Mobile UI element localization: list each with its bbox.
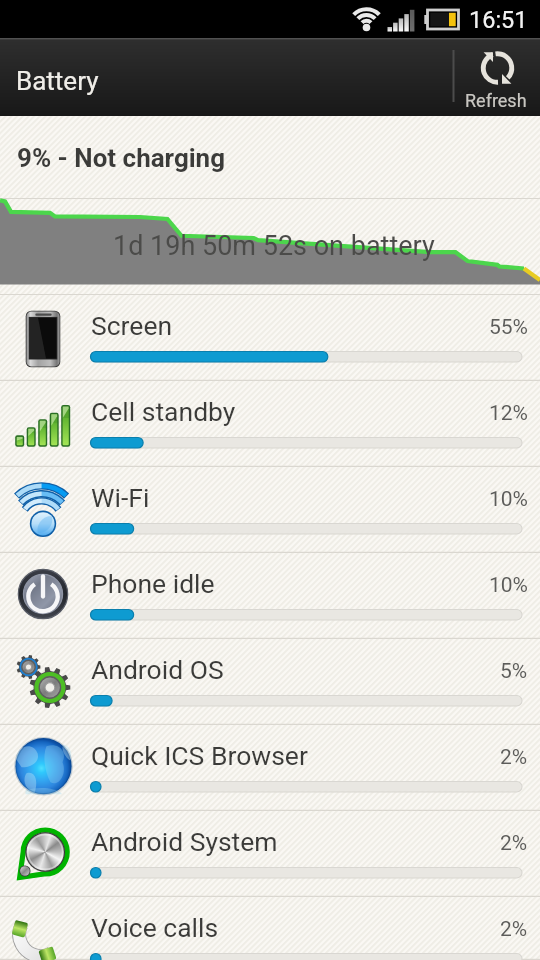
- staticText: 16:51: [469, 6, 528, 34]
- staticText: Voice calls: [91, 912, 219, 943]
- staticText: 12%: [489, 401, 528, 426]
- button[interactable]: Android System: [0, 811, 540, 897]
- staticText: 2%: [500, 831, 528, 856]
- staticText: Quick ICS Browser: [91, 740, 308, 771]
- staticText: Phone idle: [91, 568, 215, 599]
- staticText: 10%: [489, 573, 528, 598]
- staticText: 5%: [500, 659, 528, 684]
- button[interactable]: Phone idle: [0, 553, 540, 639]
- staticText: Screen: [91, 310, 173, 341]
- staticText: 10%: [489, 487, 528, 512]
- staticText: 2%: [500, 745, 528, 770]
- button[interactable]: Android OS: [0, 639, 540, 725]
- button[interactable]: Quick ICS Browser: [0, 725, 540, 811]
- staticText: Wi-Fi: [91, 482, 150, 513]
- staticText: 9% - Not charging: [17, 143, 226, 173]
- button[interactable]: Refresh: [452, 38, 540, 116]
- staticText: Cell standby: [91, 396, 236, 427]
- staticText: Android OS: [91, 654, 224, 685]
- button[interactable]: Cell standby: [0, 381, 540, 467]
- staticText: 2%: [500, 917, 528, 942]
- staticText: 1d 19h 50m 52s on battery: [113, 230, 435, 262]
- button[interactable]: Screen: [0, 295, 540, 381]
- staticText: Battery: [16, 66, 99, 96]
- staticText: Android System: [91, 826, 278, 857]
- staticText: 55%: [489, 315, 528, 340]
- button[interactable]: Wi-Fi: [0, 467, 540, 553]
- staticText: Refresh: [465, 90, 527, 111]
- button[interactable]: Voice calls: [0, 897, 540, 960]
